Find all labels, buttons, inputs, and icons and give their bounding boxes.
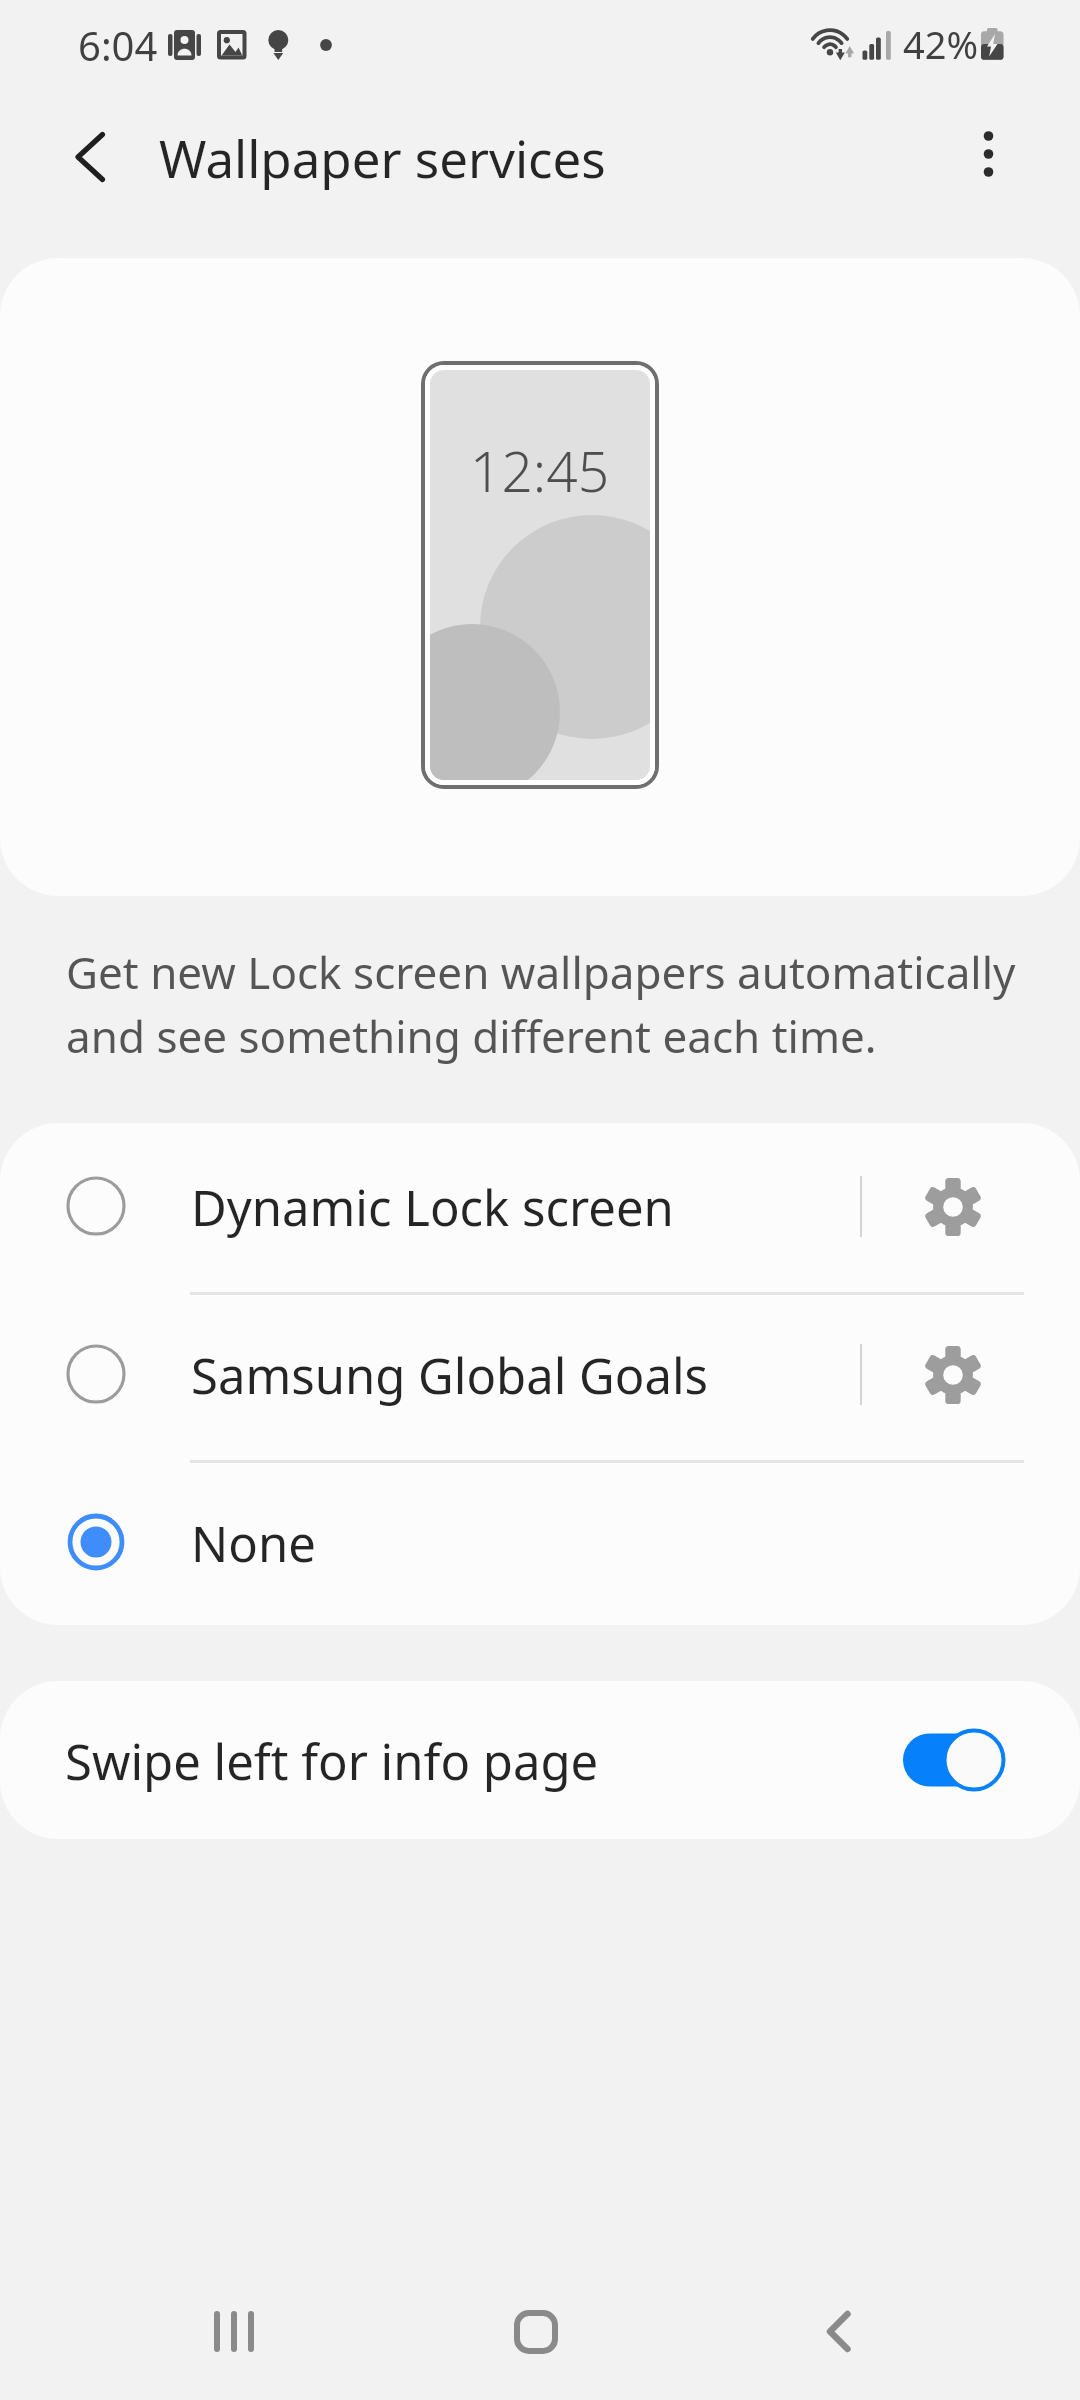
- button[interactable]: Settings: [888, 1291, 1018, 1458]
- button[interactable]: Dynamic Lock screen: [0, 1123, 1080, 1290]
- staticText: Get new Lock screen wallpapers automatic…: [66, 942, 1056, 1066]
- button[interactable]: Recents: [144, 2255, 324, 2400]
- staticText: Dynamic Lock screen: [191, 1174, 674, 1241]
- button[interactable]: Navigate up: [53, 122, 123, 192]
- button[interactable]: Swipe left for info page: [0, 1681, 1080, 1839]
- staticText: 12:45: [470, 433, 610, 508]
- staticText: Wallpaper services: [159, 123, 606, 192]
- button[interactable]: Settings: [888, 1123, 1018, 1290]
- staticText: Samsung Global Goals: [191, 1342, 708, 1409]
- button[interactable]: Home: [446, 2255, 626, 2400]
- staticText: 6:04: [78, 18, 158, 72]
- button[interactable]: None: [0, 1459, 1080, 1625]
- staticText: Swipe left for info page: [65, 1728, 599, 1795]
- staticText: None: [191, 1510, 316, 1577]
- button[interactable]: Samsung Global Goals: [0, 1291, 1080, 1458]
- button[interactable]: More options: [954, 122, 1024, 192]
- button[interactable]: Back: [748, 2255, 928, 2400]
- staticText: 42%: [903, 18, 979, 70]
